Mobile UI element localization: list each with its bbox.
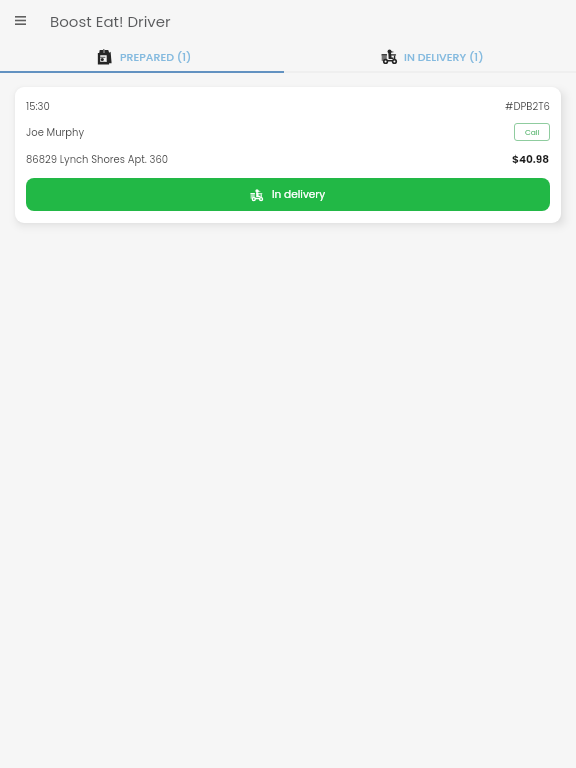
staticText: 15:30 xyxy=(26,99,50,113)
button[interactable]: In delivery xyxy=(26,178,550,211)
button[interactable]: Call xyxy=(514,123,550,141)
button[interactable]: IN DELIVERY (1) xyxy=(288,42,576,71)
staticText: Call xyxy=(525,127,540,137)
button[interactable]: PREPARED (1) xyxy=(0,42,288,71)
staticText: #DPB2T6 xyxy=(505,99,550,113)
staticText: $40.98 xyxy=(512,152,550,167)
staticText: 86829 Lynch Shores Apt. 360 xyxy=(26,152,169,166)
button[interactable]: Open navigation menu xyxy=(6,6,34,34)
staticText: Boost Eat! Driver xyxy=(50,11,171,32)
staticText: In delivery xyxy=(272,187,326,202)
staticText: Joe Murphy xyxy=(26,125,85,139)
staticText: IN DELIVERY (1) xyxy=(404,49,484,64)
staticText: PREPARED (1) xyxy=(120,49,192,64)
